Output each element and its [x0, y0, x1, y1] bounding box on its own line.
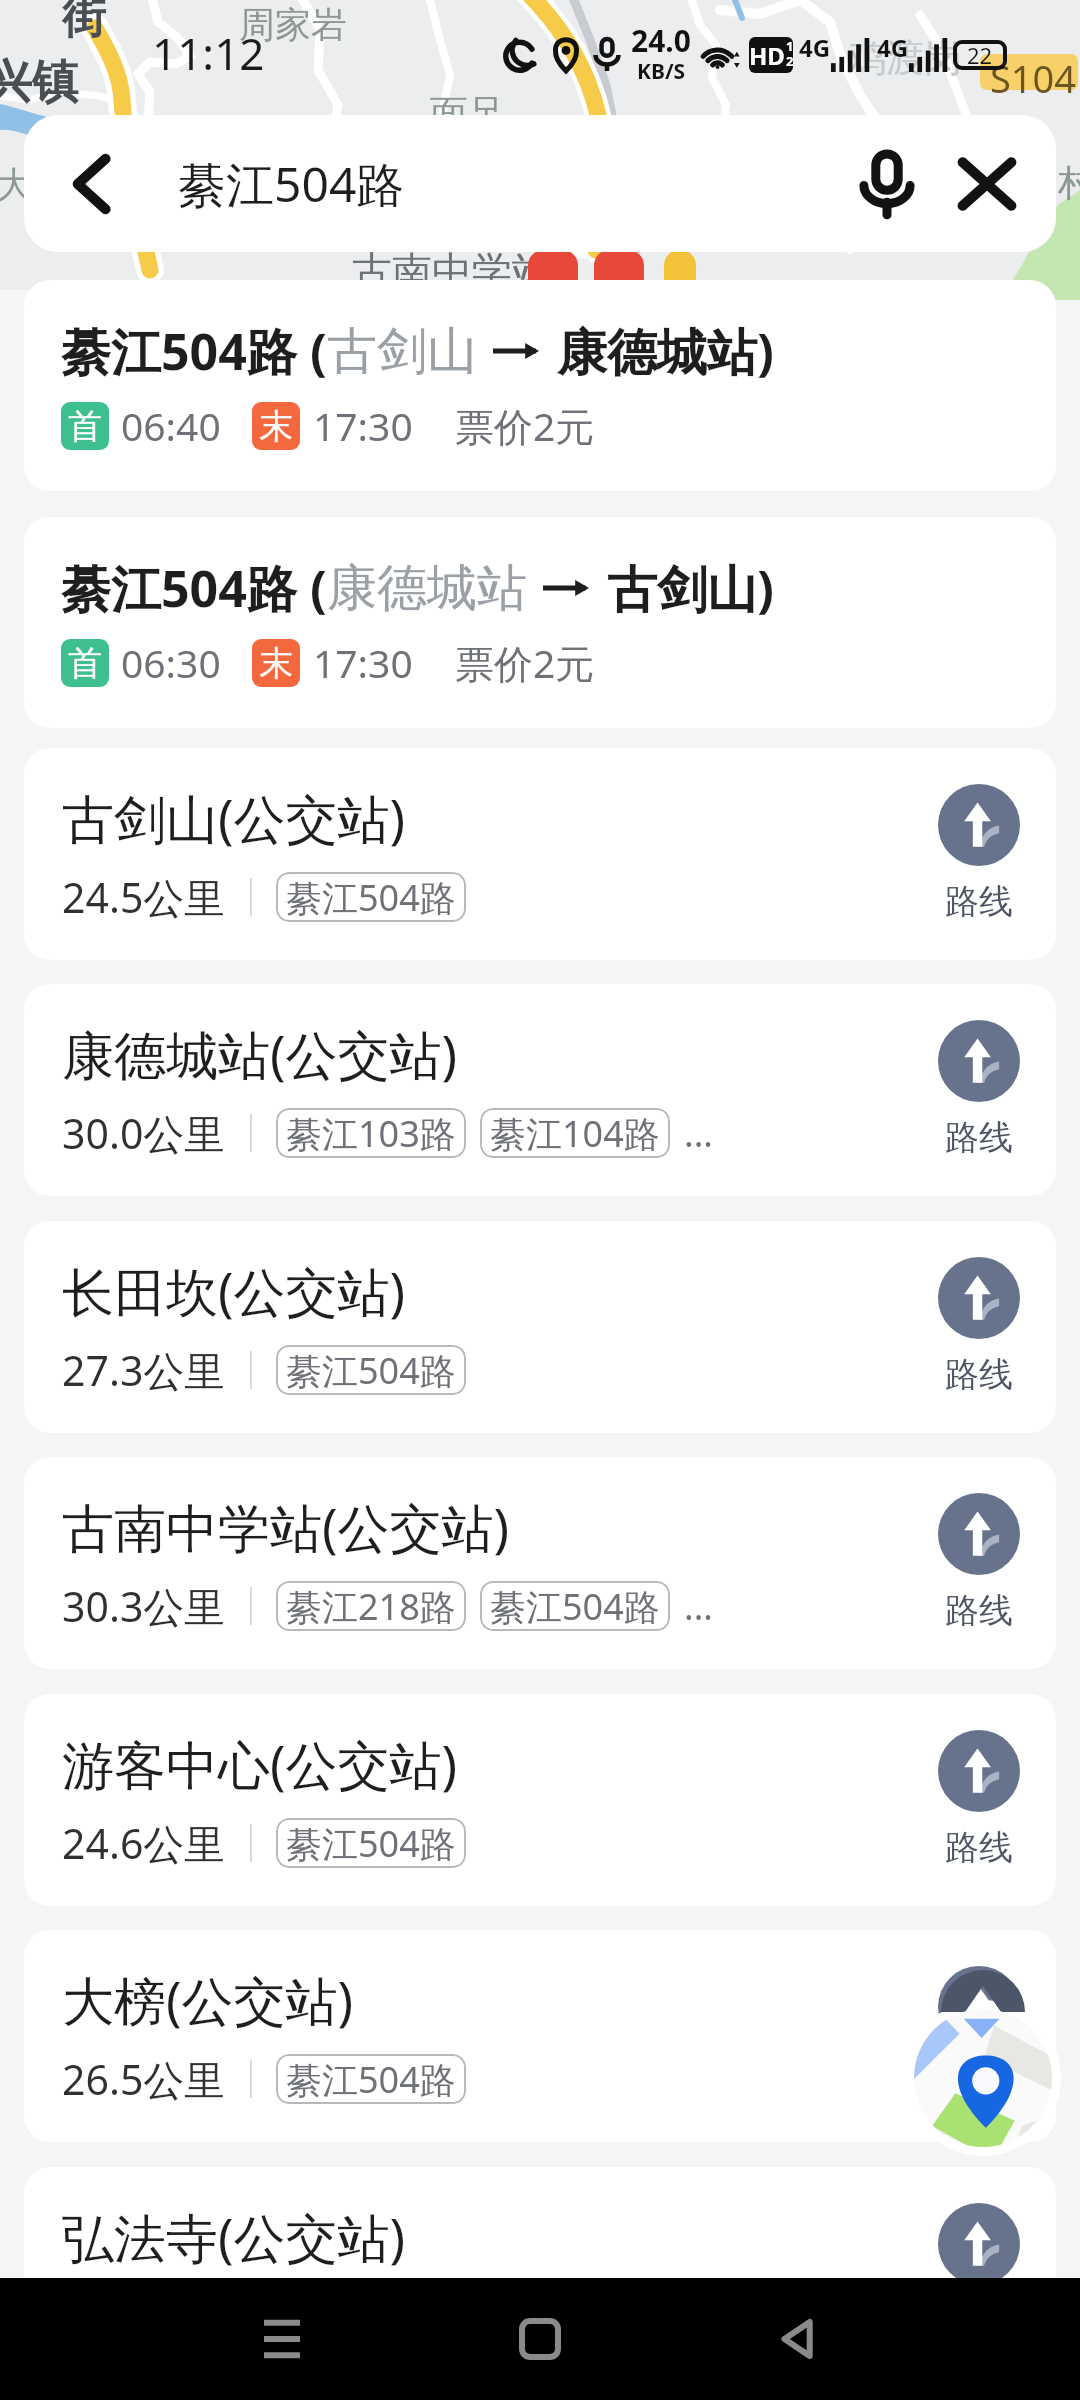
staticText: 游客中心(公交站): [62, 1728, 458, 1799]
staticText: 綦江504路: [286, 873, 456, 922]
button[interactable]: Back: [753, 2294, 843, 2384]
button[interactable]: Route: [938, 1493, 1020, 1632]
staticText: 街: [62, 0, 106, 45]
staticText: 綦江218路: [286, 1582, 456, 1631]
staticText: 24.0: [631, 20, 691, 61]
button[interactable]: 长田坎(公交站): [24, 1221, 1056, 1433]
staticText: 26.5公里: [62, 2051, 226, 2107]
staticText: 票价2元: [455, 399, 595, 452]
button[interactable]: Route: [938, 1257, 1020, 1396]
button[interactable]: 綦江504路: [24, 280, 1056, 491]
staticText: 1: [786, 37, 793, 55]
button[interactable]: 康德城站(公交站): [24, 984, 1056, 1196]
button[interactable]: Route: [938, 1966, 1020, 2105]
staticText: 面足: [430, 90, 506, 138]
staticText: 弘法寺(公交站): [62, 2201, 406, 2272]
staticText: 綦江504路: [61, 554, 297, 622]
staticText: 綦江504路: [490, 1582, 660, 1631]
staticText: HD: [749, 39, 785, 72]
staticText: 路线: [945, 1589, 1013, 1632]
staticText: 路线: [945, 1353, 1013, 1396]
staticText: 24.6公里: [62, 1815, 226, 1871]
staticText: ...: [684, 1582, 713, 1631]
staticText: 17:30: [313, 399, 413, 452]
staticText: 票价2元: [455, 636, 595, 689]
staticText: (: [297, 554, 327, 622]
staticText: 22: [967, 40, 993, 70]
staticText: 村: [1058, 160, 1080, 205]
staticText: 末: [259, 642, 293, 685]
staticText: 古南中学站: [352, 246, 552, 296]
button[interactable]: Route: [938, 1020, 1020, 1159]
staticText: 綦江104路: [490, 1109, 660, 1158]
staticText: 康德城站): [557, 317, 774, 385]
button[interactable]: Recents: [237, 2294, 327, 2384]
staticText: 路线: [945, 1116, 1013, 1159]
button[interactable]: Clear: [954, 151, 1020, 217]
staticText: S104: [990, 52, 1077, 104]
staticText: 路线: [945, 2062, 1013, 2105]
button[interactable]: 游客中心(公交站): [24, 1694, 1056, 1906]
staticText: 27.3公里: [62, 1342, 226, 1398]
staticText: 30.0公里: [62, 1105, 226, 1161]
staticText: 30.3公里: [62, 1578, 226, 1634]
staticText: 首: [68, 642, 102, 685]
button[interactable]: 綦江504路: [24, 517, 1056, 728]
staticText: 古剑山): [607, 554, 774, 622]
staticText: 周家岩: [239, 2, 347, 47]
staticText: KB/S: [637, 57, 686, 86]
staticText: 康德城站: [327, 557, 527, 620]
button[interactable]: 弘法寺(公交站): [24, 2167, 1056, 2379]
staticText: 綦江103路: [286, 1109, 456, 1158]
button[interactable]: 古南中学站(公交站): [24, 1457, 1056, 1669]
staticText: 17:30: [313, 636, 413, 689]
staticText: 4G: [799, 31, 831, 64]
button[interactable]: Back: [48, 139, 138, 229]
staticText: 11:12: [152, 23, 265, 83]
staticText: 2: [786, 52, 793, 70]
staticText: 4G: [877, 31, 909, 64]
staticText: 綦江504路: [61, 317, 297, 385]
button[interactable]: Show map: [908, 1970, 1080, 2160]
button[interactable]: Home: [495, 2294, 585, 2384]
staticText: 康德城站(公交站): [62, 1018, 458, 1089]
staticText: 兴镇: [0, 54, 78, 112]
staticText: 綦江504路: [286, 2055, 456, 2104]
staticText: 古南中学站(公交站): [62, 1491, 510, 1562]
staticText: 綦江504路: [286, 1819, 456, 1868]
staticText: 06:40: [121, 399, 221, 452]
staticText: 路线: [945, 880, 1013, 923]
staticText: 古剑山(公交站): [62, 782, 406, 853]
staticText: 首: [68, 405, 102, 448]
staticText: 綦江504路: [178, 151, 405, 217]
staticText: 鸡渡岗: [848, 34, 962, 82]
staticText: 06:30: [121, 636, 221, 689]
button[interactable]: Route: [938, 1730, 1020, 1869]
staticText: ...: [684, 1109, 713, 1158]
button[interactable]: 古剑山(公交站): [24, 748, 1056, 960]
staticText: 古剑山: [327, 320, 477, 383]
staticText: 24.5公里: [62, 869, 226, 925]
staticText: 綦江504路: [286, 1346, 456, 1395]
staticText: 末: [259, 405, 293, 448]
staticText: 大榜(公交站): [62, 1964, 354, 2035]
staticText: 长田坎(公交站): [62, 1255, 406, 1326]
staticText: (: [297, 317, 327, 385]
button[interactable]: Voice search: [852, 149, 922, 219]
button[interactable]: Route: [938, 784, 1020, 923]
staticText: 大地: [0, 162, 68, 207]
staticText: 路线: [945, 1826, 1013, 1869]
button[interactable]: Route: [938, 2203, 1020, 2342]
button[interactable]: 大榜(公交站): [24, 1930, 1056, 2142]
